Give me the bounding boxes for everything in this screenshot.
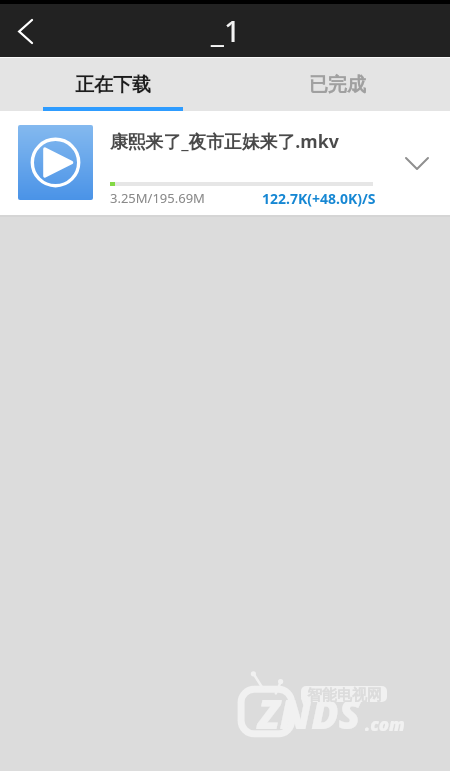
button[interactable]: Expand <box>382 111 450 215</box>
staticText: _1 <box>211 11 241 50</box>
button[interactable]: 康熙来了_夜市正妹来了.mkv <box>0 111 450 215</box>
staticText: 122.7K(+48.0K)/S <box>262 189 376 208</box>
staticText: 已完成 <box>309 73 366 97</box>
staticText: .com <box>365 713 405 736</box>
staticText: 正在下载 <box>75 73 151 97</box>
staticText: ZNDS <box>258 686 361 740</box>
staticText: 康熙来了_夜市正妹来了.mkv <box>110 129 339 153</box>
button[interactable]: Back <box>0 4 46 57</box>
button[interactable]: 已完成 <box>225 58 450 111</box>
staticText: 3.25M/195.69M <box>110 189 205 207</box>
button[interactable]: 正在下载 <box>0 58 225 111</box>
staticText: 智能电视网 <box>307 686 382 702</box>
